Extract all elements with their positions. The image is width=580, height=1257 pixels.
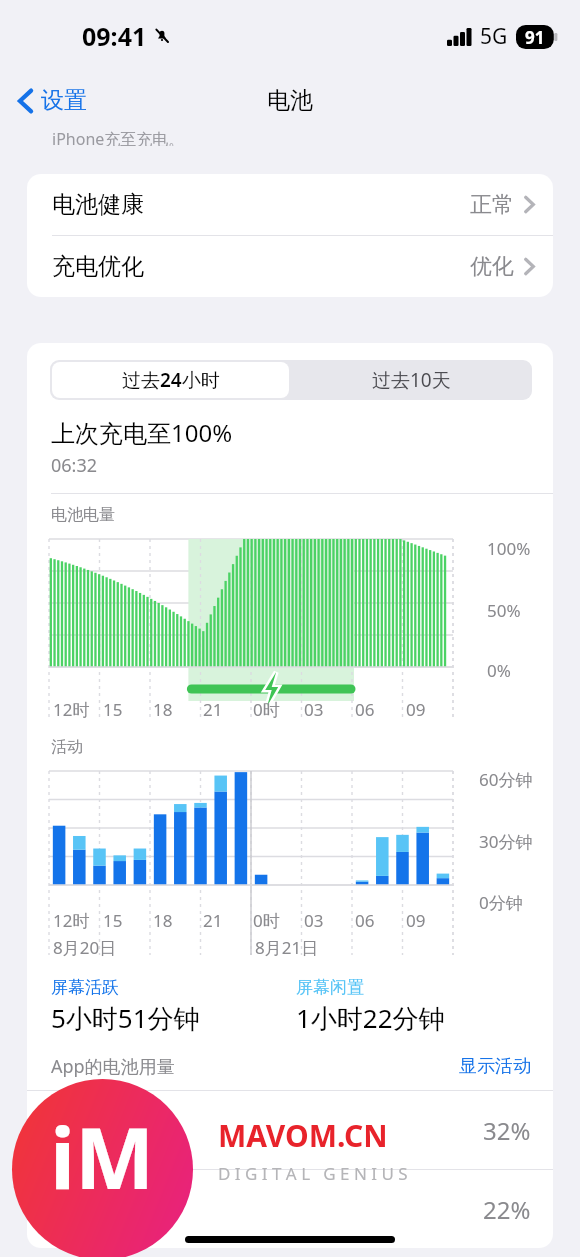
button[interactable]: 过去24小时 [52, 362, 289, 398]
staticText: D I G I T A L G E N I U S [218, 1162, 408, 1185]
staticText: 0分钟 [479, 891, 523, 914]
staticText: 8月21日 [255, 936, 319, 959]
staticText: 09:41 [82, 19, 147, 53]
staticText: 设置 [41, 86, 87, 115]
staticText: 5小时51分钟 [51, 1000, 200, 1036]
staticText: iPhone充至充电。 [52, 128, 185, 146]
staticText: 91 [525, 26, 545, 49]
button[interactable]: 22% [27, 1170, 553, 1248]
staticText: 06 [355, 698, 375, 721]
staticText: 09 [406, 698, 426, 721]
staticText: 电池 [267, 86, 313, 115]
staticText: 06:32 [51, 453, 98, 478]
staticText: 0时 [253, 698, 280, 721]
staticText: 32% [483, 1114, 531, 1147]
staticText: 0时 [253, 909, 280, 932]
staticText: 03 [304, 909, 324, 932]
staticText: 上次充电至100% [51, 416, 233, 449]
staticText: 18 [153, 909, 173, 932]
staticText: 0% [487, 659, 511, 682]
staticText: 活动 [51, 737, 83, 757]
staticText: 充电优化 [52, 252, 144, 281]
staticText: 100% [487, 537, 531, 560]
staticText: 屏幕闲置 [296, 977, 364, 998]
staticText: 过去24小时 [122, 367, 220, 393]
staticText: 09 [406, 909, 426, 932]
staticText: 22% [483, 1193, 531, 1226]
staticText: 30分钟 [479, 830, 533, 853]
staticText: 显示活动 [459, 1055, 531, 1078]
staticText: 12时 [53, 909, 90, 932]
button[interactable]: 设置 [12, 82, 93, 119]
staticText: 12时 [53, 698, 90, 721]
button[interactable]: 电池健康 [27, 174, 553, 235]
staticText: 18 [153, 698, 173, 721]
staticText: MAVOM.CN [218, 1115, 388, 1156]
staticText: 5G [480, 22, 508, 51]
button[interactable]: 过去10天 [291, 360, 532, 400]
button[interactable]: 充电优化 [27, 236, 553, 297]
staticText: 15 [103, 909, 123, 932]
staticText: iM [50, 1099, 155, 1213]
staticText: 正常 [470, 191, 514, 219]
staticText: 06 [355, 909, 375, 932]
staticText: 优化 [470, 253, 514, 281]
staticText: 电池电量 [51, 505, 115, 525]
button[interactable]: 显示活动 [459, 1055, 531, 1078]
staticText: 屏幕活跃 [51, 977, 119, 998]
staticText: 60分钟 [479, 768, 533, 791]
staticText: 电池健康 [52, 190, 144, 219]
staticText: 过去10天 [372, 367, 451, 393]
staticText: 15 [103, 698, 123, 721]
button[interactable]: 32% [27, 1091, 553, 1169]
staticText: 03 [304, 698, 324, 721]
staticText: App的电池用量 [51, 1054, 175, 1079]
staticText: 50% [487, 599, 521, 622]
staticText: 21 [203, 909, 223, 932]
staticText: 8月20日 [53, 936, 117, 959]
staticText: 1小时22分钟 [296, 1000, 445, 1036]
staticText: 21 [203, 698, 223, 721]
